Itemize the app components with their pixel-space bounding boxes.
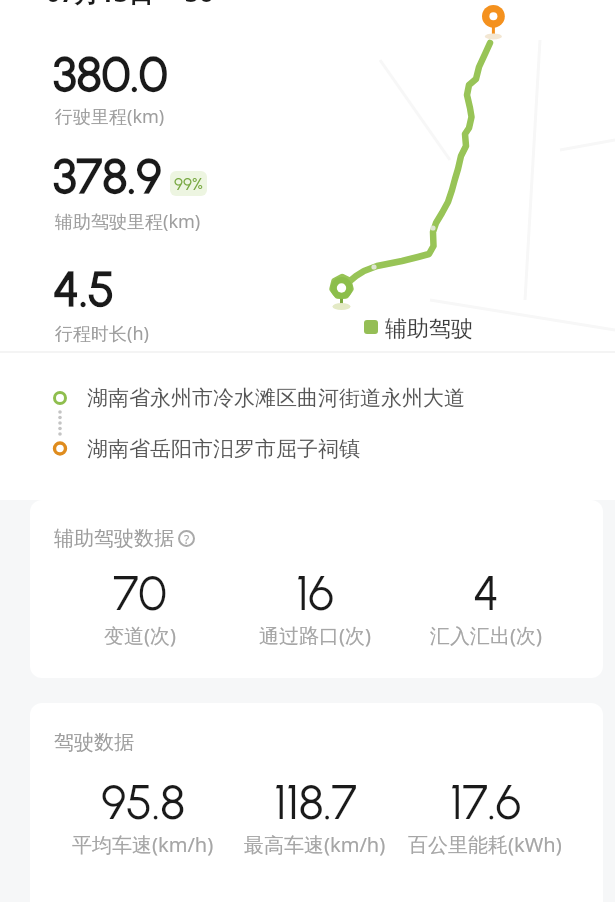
staticText: 行驶里程(km) [55, 104, 165, 129]
staticText: 变道(次) [104, 622, 176, 649]
staticText: ? [184, 531, 190, 547]
staticText: 17.6 [450, 773, 521, 831]
staticText: 平均车速(km/h) [72, 831, 214, 858]
staticText: 118.7 [274, 773, 357, 831]
staticText: 16 [296, 564, 334, 622]
staticText: 百公里能耗(kWh) [408, 831, 562, 858]
staticText: 汇入汇出(次) [430, 622, 542, 649]
staticText: 辅助驾驶里程(km) [55, 209, 201, 234]
staticText: 辅助驾驶 [385, 315, 473, 343]
staticText: 湖南省岳阳市汨罗市屈子祠镇 [87, 436, 360, 462]
staticText: 4.5 [53, 260, 115, 318]
staticText: 行程时长(h) [55, 321, 149, 346]
button[interactable]: 驾驶数据 [30, 703, 603, 902]
staticText: 湖南省永州市冷水滩区曲河街道永州大道 [87, 385, 465, 411]
staticText: 07月13日 56 [46, 0, 214, 9]
staticText: 378.9 [53, 147, 162, 205]
staticText: 辅助驾驶数据 [54, 526, 174, 551]
button[interactable]: 辅助驾驶数据 [30, 500, 603, 678]
staticText: 99% [174, 174, 203, 194]
staticText: 4 [473, 564, 499, 622]
staticText: 通过路口(次) [259, 622, 371, 649]
staticText: 驾驶数据 [54, 730, 134, 755]
staticText: 70 [113, 564, 167, 622]
staticText: 95.8 [101, 773, 185, 831]
staticText: 380.0 [53, 45, 168, 103]
staticText: 最高车速(km/h) [244, 831, 386, 858]
button[interactable]: ? [178, 530, 195, 547]
